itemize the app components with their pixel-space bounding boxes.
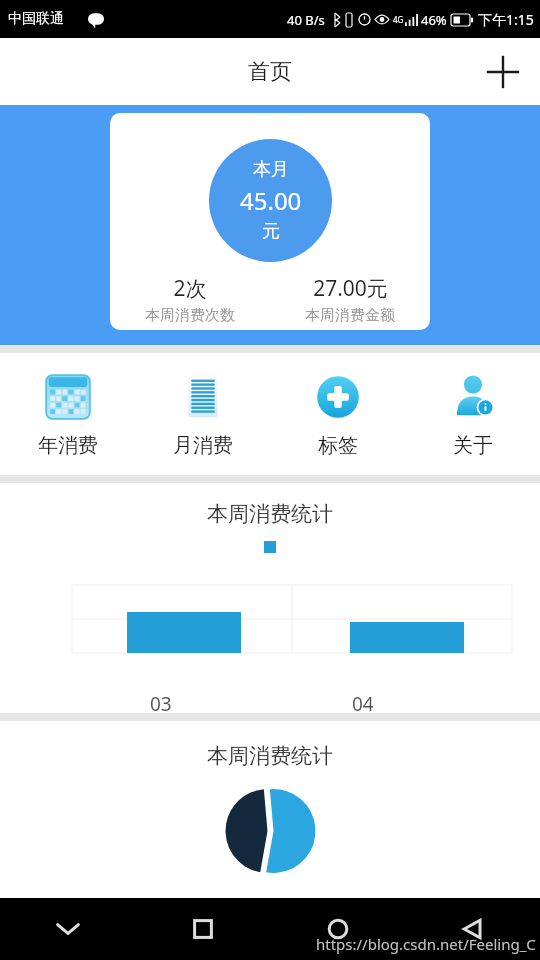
button[interactable]: Add (480, 49, 526, 95)
button[interactable]: Home (270, 898, 405, 960)
button[interactable]: 月消费 (135, 353, 270, 475)
button[interactable]: 年消费 (0, 353, 135, 475)
staticText: 首页 (248, 58, 292, 86)
staticText: 关于 (453, 433, 493, 458)
staticText: 本月 (253, 158, 289, 181)
staticText: 本周消费统计 (207, 501, 333, 527)
staticText: 年消费 (38, 433, 98, 458)
button[interactable]: Back (405, 898, 540, 960)
staticText: 40 B/s (287, 11, 325, 29)
button[interactable]: 标签 (270, 353, 405, 475)
button[interactable]: 2次 (110, 274, 270, 325)
staticText: 标签 (318, 433, 358, 458)
staticText: 03 (150, 691, 172, 713)
button[interactable]: 关于 (405, 353, 540, 475)
staticText: 元 (262, 220, 280, 243)
staticText: https://blog.csdn.net/Feeling_C (316, 934, 536, 954)
button[interactable]: 27.00元 (270, 274, 430, 325)
staticText: 45.00 (240, 184, 302, 217)
staticText: 2次 (173, 274, 207, 303)
button[interactable]: Collapse (0, 898, 135, 960)
staticText: 下午1:15 (478, 10, 534, 29)
staticText: 27.00元 (313, 274, 388, 303)
staticText: 4G (393, 14, 404, 25)
staticText: 月消费 (173, 433, 233, 458)
button[interactable]: 本月 (110, 113, 430, 330)
staticText: 本周消费次数 (145, 306, 235, 325)
staticText: 本周消费金额 (305, 306, 395, 325)
staticText: 本周消费统计 (207, 743, 333, 769)
staticText: 46% (421, 11, 447, 29)
staticText: 中国联通 (8, 10, 64, 28)
button[interactable]: Recent apps (135, 898, 270, 960)
staticText: 04 (352, 691, 374, 713)
